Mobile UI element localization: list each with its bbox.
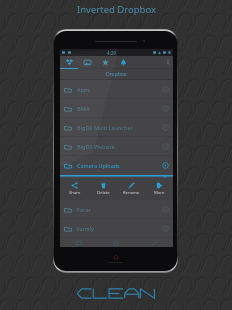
staticText: BigDX Multi Launcher: [77, 124, 133, 131]
staticText: Dropbox: [106, 71, 127, 78]
staticText: Share: [69, 190, 81, 196]
button[interactable]: Back: [135, 238, 173, 247]
staticText: BigDX Website: [77, 143, 115, 150]
button[interactable]: Share: [60, 178, 89, 200]
button[interactable]: Facer: [60, 200, 173, 219]
button[interactable]: More: [145, 178, 173, 200]
button[interactable]: Rename: [117, 178, 145, 200]
button[interactable]: Apps: [60, 80, 173, 99]
button[interactable]: Notifications: [114, 56, 132, 68]
staticText: Facer: [77, 206, 91, 213]
staticText: Rename: [123, 190, 140, 196]
button[interactable]: Camera Uploads: [60, 156, 173, 175]
button[interactable]: Family: [60, 219, 173, 238]
button[interactable]: BAM: [60, 99, 173, 118]
staticText: Delete: [97, 190, 110, 196]
staticText: Inverted Dropbox: [77, 3, 156, 16]
staticText: More: [154, 190, 165, 196]
staticText: 4:29: [107, 50, 116, 56]
staticText: Family: [77, 225, 94, 232]
button[interactable]: Favorites: [96, 56, 114, 68]
staticText: BAM: [77, 105, 90, 112]
button[interactable]: Photos: [78, 56, 96, 68]
button[interactable]: Delete: [89, 178, 117, 200]
button[interactable]: Home: [97, 238, 135, 247]
button[interactable]: Recents: [60, 238, 97, 247]
button[interactable]: More options: [163, 56, 173, 68]
staticText: Camera Uploads: [77, 162, 120, 169]
button[interactable]: BigDX Website: [60, 137, 173, 156]
button[interactable]: BigDX Multi Launcher: [60, 118, 173, 137]
staticText: Apps: [77, 86, 90, 93]
button[interactable]: Files: [60, 56, 78, 68]
